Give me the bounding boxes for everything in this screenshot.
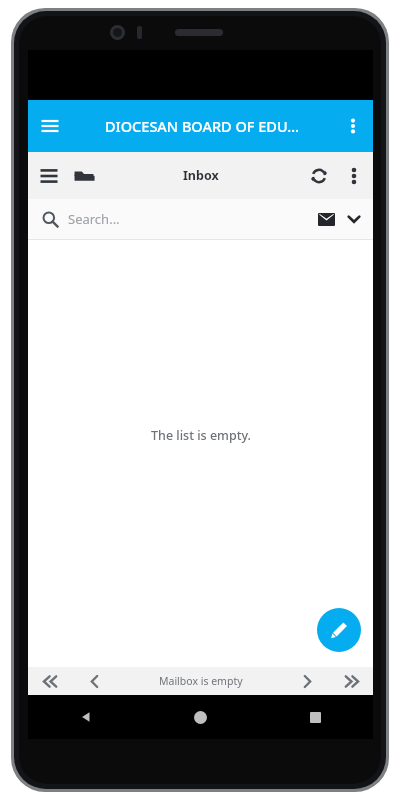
button[interactable]: Expand filters [341,206,367,232]
button[interactable]: Last page [329,667,373,695]
staticText: DIOCESAN BOARD OF EDU… [105,116,300,136]
button[interactable]: More options [339,161,369,191]
button[interactable]: Message filter [311,204,341,234]
staticText: The list is empty. [151,427,251,444]
button[interactable]: Refresh [299,156,339,196]
button[interactable]: Navigation drawer [28,104,72,148]
staticText: Mailbox is empty [159,674,243,688]
button[interactable]: More options [333,106,373,146]
button[interactable]: Folders [66,158,102,194]
button[interactable]: Menu [32,159,66,193]
button[interactable]: Home [143,695,258,739]
staticText: Inbox [183,167,219,184]
button[interactable]: Search... [28,199,373,239]
button[interactable]: Compose message [317,608,361,652]
button[interactable]: First page [28,667,72,695]
button[interactable]: Previous page [72,667,116,695]
button[interactable]: Next page [285,667,329,695]
button[interactable]: Recent apps [258,695,373,739]
button[interactable]: Back [28,695,143,739]
staticText: Search... [68,210,120,228]
